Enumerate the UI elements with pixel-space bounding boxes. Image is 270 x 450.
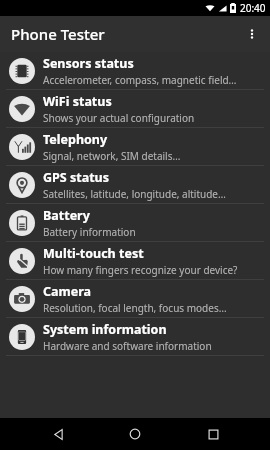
staticText: Telephony: [43, 131, 108, 148]
staticText: Accelerometer, compass, magnetic field…: [43, 73, 237, 87]
button[interactable]: Home: [115, 418, 155, 450]
button[interactable]: GPS status: [0, 166, 270, 203]
button[interactable]: Recents: [193, 418, 233, 450]
staticText: Battery: [43, 207, 90, 224]
staticText: Resolution, focal length, focus modes…: [43, 301, 227, 315]
button[interactable]: Multi-touch test: [0, 242, 270, 279]
button[interactable]: Camera: [0, 280, 270, 317]
staticText: GPS status: [43, 169, 109, 186]
staticText: Camera: [43, 283, 91, 300]
button[interactable]: Battery: [0, 204, 270, 241]
staticText: Hardware and software information: [43, 339, 212, 353]
button[interactable]: Telephony: [0, 128, 270, 165]
staticText: Phone Tester: [11, 24, 105, 44]
button[interactable]: Sensors status: [0, 52, 270, 89]
staticText: Multi-touch test: [43, 245, 144, 262]
staticText: 20:40: [240, 1, 266, 15]
button[interactable]: WiFi status: [0, 90, 270, 127]
button[interactable]: More options: [234, 16, 270, 52]
staticText: How many fingers recognize your device?: [43, 263, 238, 277]
staticText: System information: [43, 321, 167, 338]
button[interactable]: System information: [0, 318, 270, 355]
staticText: Sensors status: [43, 55, 134, 72]
staticText: WiFi status: [43, 93, 112, 110]
button[interactable]: Back: [38, 418, 78, 450]
staticText: Satellites, latitude, longitude, altitud…: [43, 187, 226, 201]
staticText: Signal, network, SIM details…: [43, 149, 181, 163]
staticText: Shows your actual configuration: [43, 111, 195, 125]
staticText: Battery information: [43, 225, 136, 239]
